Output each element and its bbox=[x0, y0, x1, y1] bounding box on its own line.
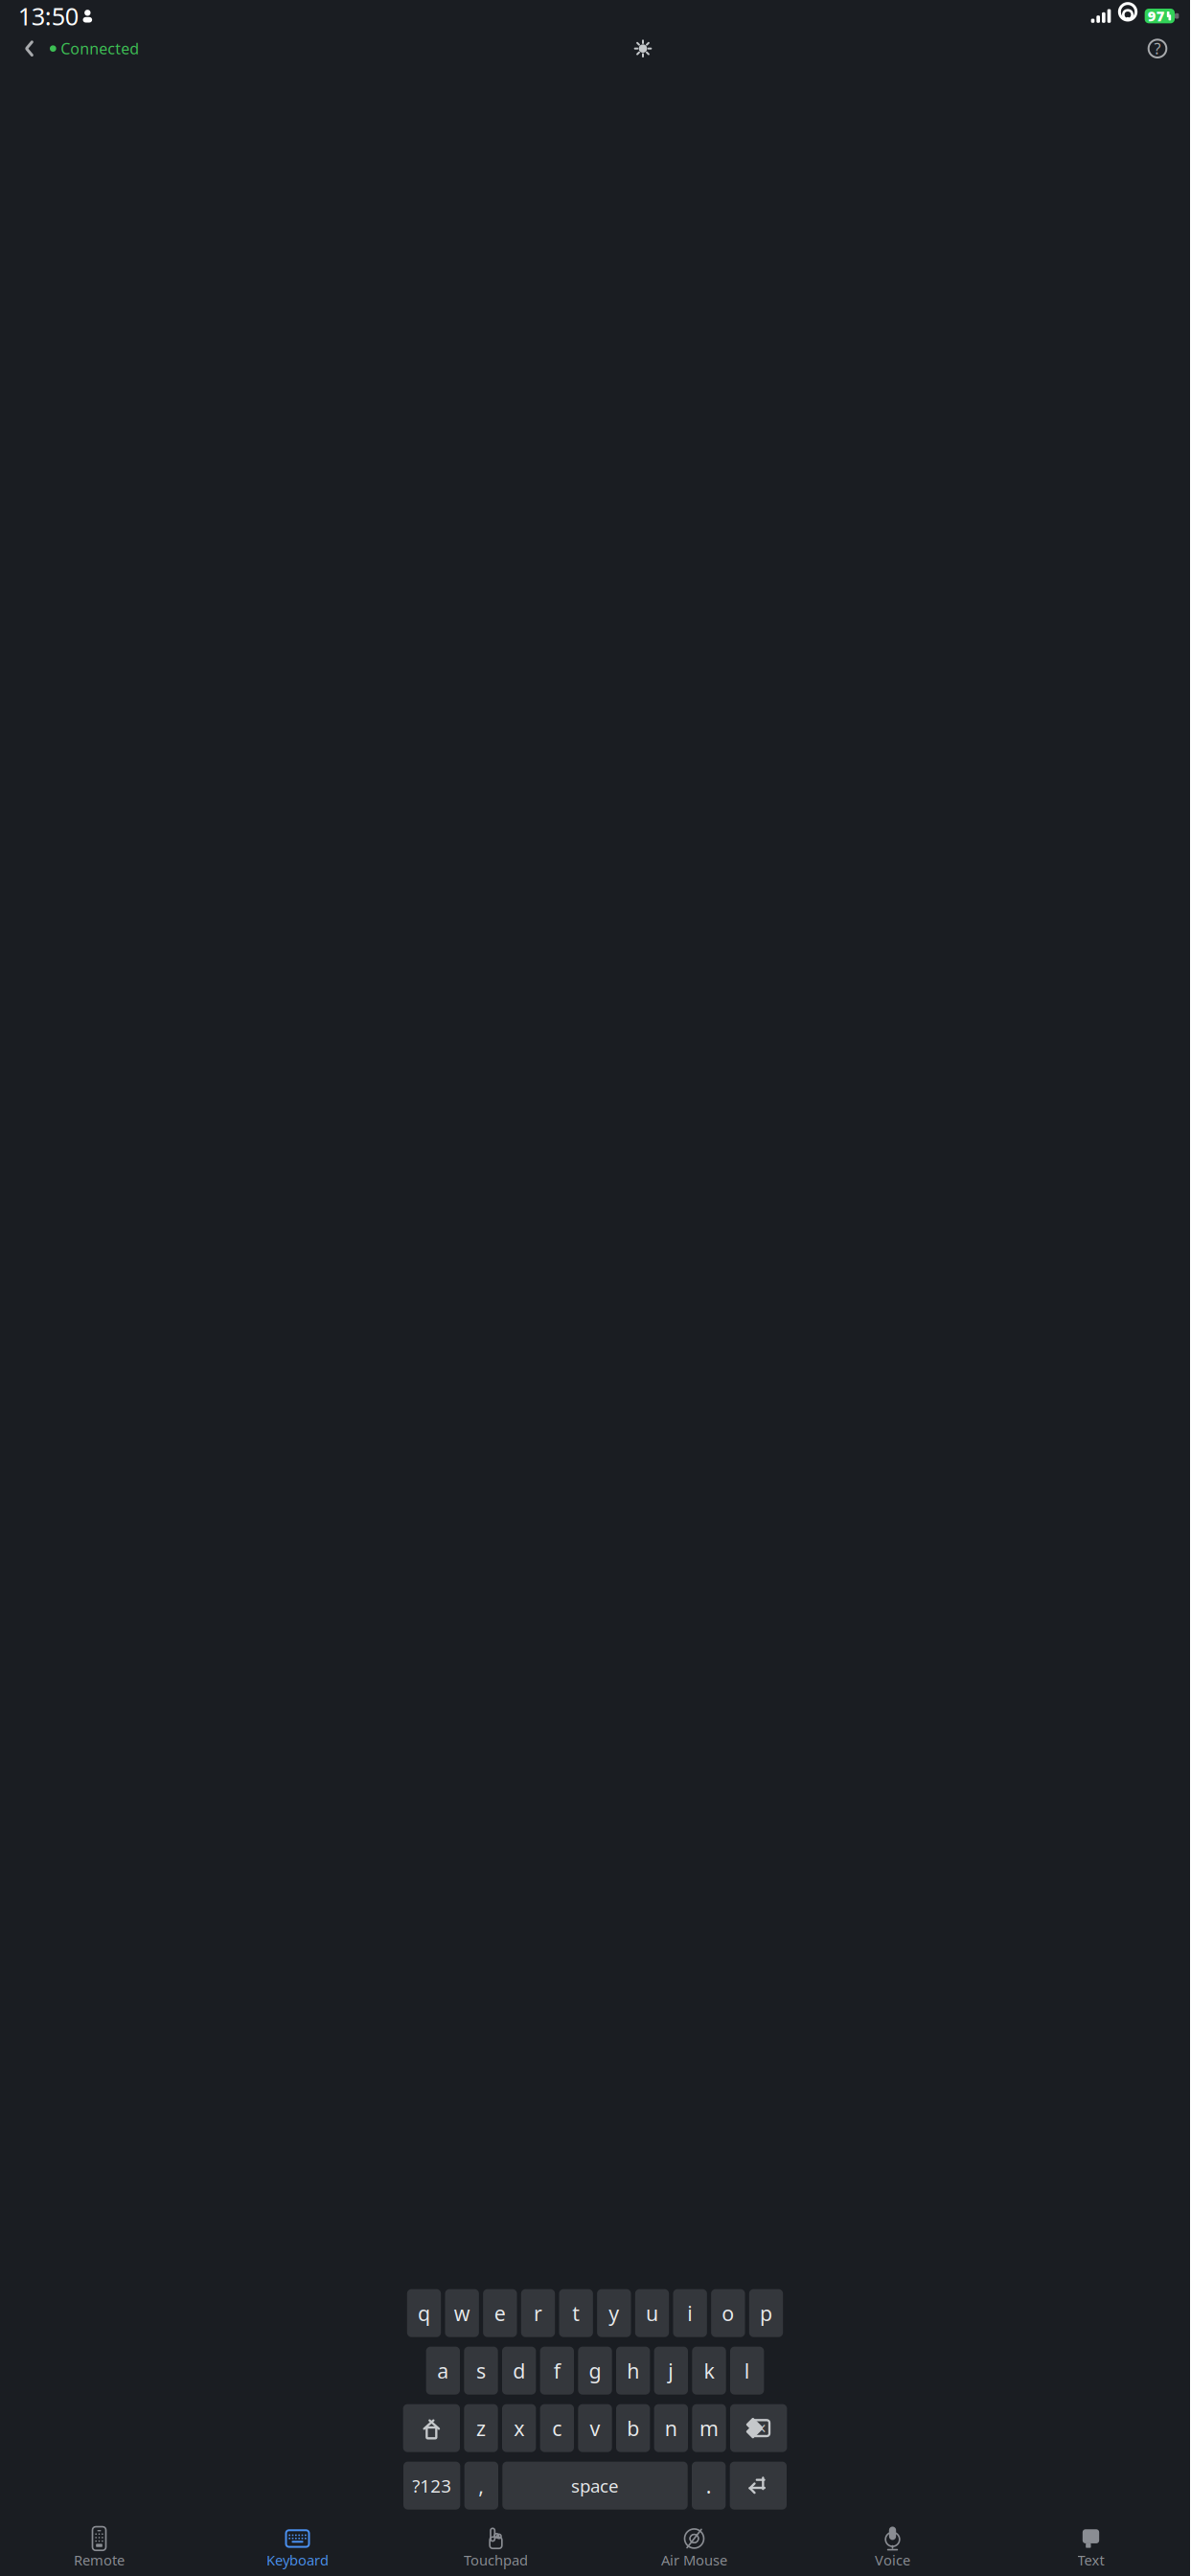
staticText: e bbox=[494, 2300, 506, 2327]
staticText: x bbox=[514, 2415, 524, 2442]
button[interactable]: m bbox=[692, 2404, 726, 2452]
staticText: f bbox=[554, 2357, 560, 2384]
button[interactable]: e bbox=[483, 2289, 517, 2337]
staticText: 13:50 bbox=[18, 0, 78, 32]
button[interactable]: u bbox=[635, 2289, 669, 2337]
staticText: a bbox=[437, 2357, 449, 2384]
staticText: u bbox=[646, 2300, 658, 2327]
staticText: Touchpad bbox=[464, 2551, 528, 2569]
button[interactable]: space bbox=[502, 2462, 688, 2510]
button[interactable]: , bbox=[464, 2462, 498, 2510]
button[interactable]: Voice bbox=[793, 2525, 992, 2573]
button[interactable]: k bbox=[692, 2347, 726, 2395]
staticText: b bbox=[627, 2415, 639, 2442]
button[interactable]: a bbox=[426, 2347, 460, 2395]
staticText: ?123 bbox=[412, 2474, 451, 2498]
staticText: Keyboard bbox=[266, 2551, 329, 2569]
staticText: l bbox=[744, 2357, 750, 2384]
staticText: , bbox=[478, 2472, 484, 2499]
staticText: . bbox=[706, 2472, 712, 2499]
staticText: q bbox=[418, 2300, 430, 2327]
button[interactable]: z bbox=[464, 2404, 498, 2452]
staticText: w bbox=[454, 2300, 470, 2327]
staticText: Voice bbox=[875, 2551, 910, 2569]
button[interactable]: t bbox=[559, 2289, 593, 2337]
staticText: s bbox=[476, 2357, 486, 2384]
button[interactable]: Shift bbox=[403, 2404, 460, 2452]
button[interactable]: i bbox=[673, 2289, 707, 2337]
staticText: z bbox=[476, 2415, 486, 2442]
staticText: Text bbox=[1077, 2551, 1104, 2569]
button[interactable]: v bbox=[578, 2404, 612, 2452]
staticText: 97 bbox=[1148, 7, 1165, 25]
staticText: ? bbox=[1154, 38, 1161, 59]
button[interactable]: d bbox=[502, 2347, 536, 2395]
button[interactable]: Connected bbox=[45, 33, 144, 64]
button[interactable]: f bbox=[540, 2347, 574, 2395]
staticText: g bbox=[589, 2357, 601, 2384]
staticText: d bbox=[513, 2357, 525, 2384]
staticText: n bbox=[665, 2415, 677, 2442]
staticText: c bbox=[552, 2415, 562, 2442]
button[interactable]: ?123 bbox=[403, 2462, 460, 2510]
button[interactable]: Back bbox=[14, 33, 45, 64]
button[interactable]: Backspace bbox=[730, 2404, 787, 2452]
button[interactable]: Air Mouse bbox=[595, 2525, 793, 2573]
staticText: Connected bbox=[61, 38, 139, 59]
button[interactable]: g bbox=[578, 2347, 612, 2395]
staticText: space bbox=[571, 2474, 619, 2498]
button[interactable]: . bbox=[692, 2462, 726, 2510]
staticText: p bbox=[760, 2300, 772, 2327]
button[interactable]: q bbox=[407, 2289, 441, 2337]
button[interactable]: x bbox=[502, 2404, 536, 2452]
button[interactable]: Keyboard bbox=[198, 2525, 397, 2573]
staticText: i bbox=[687, 2300, 693, 2327]
staticText: × bbox=[757, 2417, 766, 2439]
button[interactable]: b bbox=[616, 2404, 650, 2452]
button[interactable]: p bbox=[749, 2289, 783, 2337]
button[interactable]: h bbox=[616, 2347, 650, 2395]
staticText: r bbox=[534, 2300, 542, 2327]
button[interactable]: s bbox=[464, 2347, 498, 2395]
button[interactable]: Remote bbox=[0, 2525, 198, 2573]
staticText: k bbox=[704, 2357, 714, 2384]
button[interactable]: l bbox=[730, 2347, 764, 2395]
staticText: m bbox=[699, 2415, 719, 2442]
button[interactable]: n bbox=[654, 2404, 688, 2452]
staticText: j bbox=[668, 2357, 674, 2384]
staticText: o bbox=[722, 2300, 734, 2327]
button[interactable]: r bbox=[521, 2289, 555, 2337]
button[interactable]: Touchpad bbox=[397, 2525, 595, 2573]
staticText: t bbox=[572, 2300, 580, 2327]
button[interactable]: Help bbox=[1141, 33, 1173, 64]
staticText: y bbox=[609, 2300, 619, 2327]
button[interactable]: Text bbox=[992, 2525, 1190, 2573]
staticText: h bbox=[627, 2357, 639, 2384]
button[interactable]: w bbox=[445, 2289, 479, 2337]
staticText: v bbox=[590, 2415, 600, 2442]
button[interactable]: o bbox=[711, 2289, 745, 2337]
button[interactable]: Return bbox=[730, 2462, 787, 2510]
staticText: Air Mouse bbox=[661, 2551, 727, 2569]
button[interactable]: c bbox=[540, 2404, 574, 2452]
staticText: Remote bbox=[74, 2551, 125, 2569]
button[interactable]: Brightness bbox=[627, 33, 659, 64]
button[interactable]: y bbox=[597, 2289, 631, 2337]
button[interactable]: j bbox=[654, 2347, 688, 2395]
